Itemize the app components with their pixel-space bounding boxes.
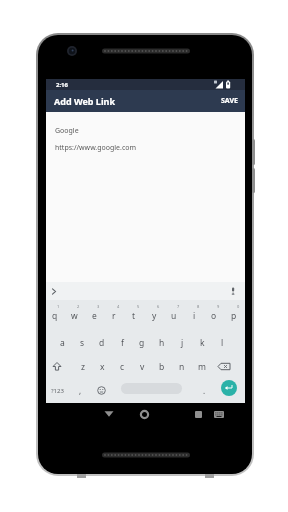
button[interactable]: .	[197, 378, 211, 403]
button[interactable]	[221, 380, 237, 396]
staticText: p	[231, 310, 237, 322]
button[interactable]: o	[204, 300, 224, 331]
button[interactable]: c	[112, 355, 132, 378]
staticText: v	[140, 361, 145, 373]
staticText: 8	[197, 304, 200, 309]
button[interactable]: v	[132, 355, 152, 378]
staticText: b	[159, 361, 165, 373]
staticText: 2	[77, 304, 80, 309]
staticText: z	[81, 361, 85, 373]
staticText: q	[52, 310, 58, 322]
staticText: x	[100, 361, 105, 373]
staticText: ,	[79, 385, 82, 396]
button[interactable]	[214, 411, 224, 418]
button[interactable]: ,	[73, 378, 87, 403]
button[interactable]: p	[224, 300, 244, 331]
button[interactable]	[104, 410, 114, 418]
staticText: Add Web Link	[54, 95, 116, 107]
staticText: y	[152, 310, 157, 322]
staticText: d	[99, 337, 105, 349]
button[interactable]: Google	[55, 126, 254, 136]
staticText: r	[112, 310, 116, 322]
button[interactable]: ?123	[47, 378, 67, 403]
staticText: 2:16	[56, 81, 68, 89]
button[interactable]: b	[152, 355, 172, 378]
staticText: a	[60, 337, 65, 349]
staticText: s	[80, 337, 85, 349]
staticText: 7	[177, 304, 180, 309]
staticText: 6	[157, 304, 160, 309]
staticText: k	[200, 337, 205, 349]
button[interactable]: f	[112, 331, 132, 355]
button[interactable]: k	[192, 331, 212, 355]
staticText: n	[179, 361, 185, 373]
staticText: u	[171, 310, 177, 322]
staticText: Google	[55, 126, 79, 136]
button[interactable]: n	[172, 355, 192, 378]
button[interactable]: s	[72, 331, 92, 355]
staticText: w	[71, 310, 78, 322]
button[interactable]: j	[172, 331, 192, 355]
staticText: ?123	[51, 387, 64, 395]
staticText: 0	[237, 304, 240, 309]
button[interactable]: SAVE	[221, 96, 238, 106]
staticText: e	[92, 310, 97, 322]
button[interactable]: m	[192, 355, 212, 378]
button[interactable]: g	[132, 331, 152, 355]
staticText: i	[193, 310, 196, 322]
button[interactable]	[215, 355, 239, 378]
button[interactable]: e	[84, 300, 104, 331]
staticText: 4	[117, 304, 120, 309]
staticText: 5	[137, 304, 140, 309]
staticText: m	[198, 361, 206, 373]
staticText: SAVE	[221, 96, 238, 106]
button[interactable]: u	[164, 300, 184, 331]
button[interactable]: l	[212, 331, 232, 355]
button[interactable]: t	[124, 300, 144, 331]
button[interactable]	[140, 410, 149, 419]
button[interactable]: q	[45, 300, 64, 331]
staticText: g	[139, 337, 145, 349]
staticText: l	[221, 337, 224, 349]
staticText: o	[211, 310, 217, 322]
button[interactable]: i	[184, 300, 204, 331]
button[interactable]: x	[92, 355, 112, 378]
button[interactable]: r	[104, 300, 124, 331]
button[interactable]: a	[53, 331, 72, 355]
staticText: .	[203, 385, 206, 396]
button[interactable]	[94, 383, 109, 398]
button[interactable]: d	[92, 331, 112, 355]
staticText: https://www.google.com	[55, 143, 137, 153]
button[interactable]	[49, 355, 73, 378]
button[interactable]: w	[64, 300, 84, 331]
staticText: 3	[97, 304, 100, 309]
button[interactable]: h	[152, 331, 172, 355]
staticText: f	[121, 337, 124, 349]
staticText: t	[132, 310, 136, 322]
button[interactable]: y	[144, 300, 164, 331]
staticText: j	[181, 337, 184, 349]
staticText: 9	[217, 304, 220, 309]
staticText: h	[159, 337, 165, 349]
staticText: c	[120, 361, 125, 373]
button[interactable]: https://www.google.com	[55, 143, 254, 153]
button[interactable]: z	[73, 355, 92, 378]
staticText: 1	[57, 304, 60, 309]
button[interactable]	[195, 411, 202, 418]
